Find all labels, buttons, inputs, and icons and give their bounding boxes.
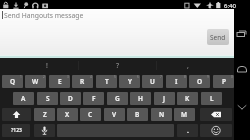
staticText: ,	[187, 61, 189, 71]
button[interactable]: V	[104, 108, 125, 121]
button[interactable]	[234, 60, 250, 80]
button[interactable]	[34, 124, 55, 137]
button[interactable]: F	[83, 92, 104, 105]
staticText: Y	[128, 77, 132, 86]
staticText: K	[185, 94, 190, 103]
staticText: 5	[114, 75, 116, 79]
staticText: R	[80, 77, 85, 86]
staticText: ?123	[11, 127, 22, 134]
button[interactable]: E	[49, 75, 70, 88]
button[interactable]: W	[25, 75, 46, 88]
button[interactable]: B	[127, 108, 148, 121]
button[interactable]: Z	[34, 108, 55, 121]
staticText: C	[88, 110, 93, 119]
button[interactable]: ?123	[2, 124, 30, 137]
button[interactable]: N	[151, 108, 172, 121]
staticText: 6	[137, 75, 139, 79]
staticText: !	[46, 61, 48, 71]
staticText: V	[112, 110, 117, 119]
button[interactable]: S	[37, 92, 58, 105]
staticText: 1	[20, 75, 22, 79]
button[interactable]: C	[80, 108, 101, 121]
button[interactable]: K	[177, 92, 198, 105]
button[interactable]: A	[13, 92, 34, 105]
staticText: ?	[116, 61, 120, 71]
button[interactable]: G	[107, 92, 128, 105]
staticText: E	[58, 77, 62, 86]
staticText: U	[150, 77, 155, 86]
button[interactable]: .	[177, 124, 198, 137]
staticText: 3	[67, 75, 69, 79]
button[interactable]	[200, 124, 232, 137]
button[interactable]: X	[57, 108, 78, 121]
button[interactable]: Y	[119, 75, 140, 88]
staticText: 9	[207, 75, 209, 79]
staticText: F	[92, 94, 96, 103]
button[interactable]: P	[213, 75, 234, 88]
button[interactable]: T	[96, 75, 117, 88]
button[interactable]: L	[201, 92, 222, 105]
staticText: Send Hangouts message	[4, 11, 84, 20]
button[interactable]: H	[130, 92, 151, 105]
staticText: L	[210, 94, 214, 103]
button[interactable]	[234, 98, 250, 118]
staticText: D	[68, 94, 73, 103]
button[interactable]: Q	[2, 75, 23, 88]
button[interactable]: O	[189, 75, 210, 88]
staticText: .	[187, 126, 189, 136]
button[interactable]: D	[60, 92, 81, 105]
staticText: Q	[10, 77, 16, 86]
button[interactable]: U	[142, 75, 163, 88]
staticText: B	[135, 110, 140, 119]
button[interactable]: I	[166, 75, 187, 88]
staticText: I	[175, 77, 178, 86]
button[interactable]: ,	[153, 58, 222, 73]
staticText: S	[46, 94, 50, 103]
staticText: J	[163, 94, 166, 103]
staticText: H	[138, 94, 143, 103]
staticText: 7	[160, 75, 162, 79]
staticText: A	[21, 94, 26, 103]
staticText: X	[65, 110, 70, 119]
staticText: Z	[43, 110, 47, 119]
button[interactable]: M	[174, 108, 195, 121]
staticText: 4	[90, 75, 92, 79]
button[interactable]	[234, 24, 250, 44]
button[interactable]: !	[12, 58, 81, 73]
staticText: Send	[210, 33, 226, 42]
button[interactable]: R	[72, 75, 93, 88]
staticText: W	[32, 77, 39, 86]
staticText: M	[181, 110, 188, 119]
staticText: N	[159, 110, 165, 119]
staticText: 0	[231, 75, 233, 79]
button[interactable]	[2, 108, 31, 121]
staticText: G	[115, 94, 120, 103]
button[interactable]	[200, 108, 232, 121]
staticText: O	[197, 77, 203, 86]
button[interactable]: Send	[207, 29, 229, 45]
staticText: T	[105, 77, 109, 86]
staticText: P	[222, 77, 226, 86]
button[interactable]: J	[154, 92, 175, 105]
staticText: 2	[43, 75, 45, 79]
staticText: 8	[184, 75, 186, 79]
button[interactable]: ?	[83, 58, 152, 73]
staticText: 6:40	[224, 2, 236, 10]
